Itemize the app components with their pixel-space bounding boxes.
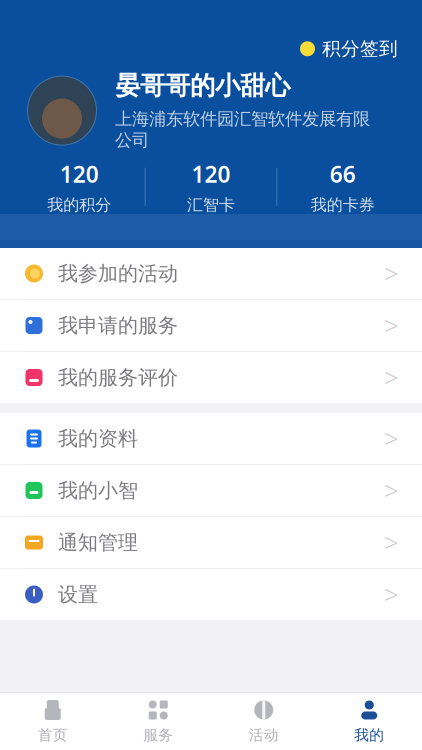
button[interactable]: 服务	[105, 693, 211, 750]
button[interactable]: 首页	[0, 693, 105, 750]
staticText: 晏哥哥的小甜心	[115, 70, 290, 101]
staticText: 我的积分	[47, 195, 111, 215]
staticText: >	[384, 361, 398, 394]
staticText: 我申请的服务	[58, 313, 178, 338]
button[interactable]: 活动	[211, 693, 316, 750]
button[interactable]: 我的服务评价	[0, 352, 422, 403]
staticText: 积分签到	[322, 37, 398, 60]
staticText: 66	[330, 159, 356, 189]
button[interactable]: 设置	[0, 569, 422, 620]
staticText: 活动	[249, 726, 279, 744]
button[interactable]: 积分签到	[296, 33, 402, 64]
staticText: 我的卡券	[311, 195, 375, 215]
staticText: 首页	[38, 726, 68, 744]
staticText: >	[384, 422, 398, 455]
staticText: >	[384, 257, 398, 290]
staticText: 服务	[143, 726, 173, 744]
staticText: >	[384, 474, 398, 507]
staticText: 120	[60, 159, 99, 189]
staticText: 汇智卡	[187, 195, 235, 215]
staticText: 我参加的活动	[58, 261, 178, 286]
button[interactable]: 我申请的服务	[0, 300, 422, 351]
staticText: 设置	[58, 582, 98, 607]
staticText: 上海浦东软件园汇智软件发展有限公司	[115, 108, 370, 151]
button[interactable]: 我的小智	[0, 465, 422, 516]
button[interactable]: 我的	[316, 693, 422, 750]
staticText: >	[384, 578, 398, 611]
staticText: >	[384, 309, 398, 342]
button[interactable]: 我的资料	[0, 413, 422, 464]
button[interactable]: 我参加的活动	[0, 248, 422, 299]
staticText: 我的服务评价	[58, 365, 178, 390]
staticText: >	[384, 526, 398, 559]
staticText: 我的资料	[58, 426, 138, 451]
button[interactable]: 通知管理	[0, 517, 422, 568]
staticText: 120	[191, 159, 230, 189]
staticText: 我的	[354, 726, 384, 744]
staticText: 通知管理	[58, 530, 138, 555]
staticText: 我的小智	[58, 478, 138, 503]
